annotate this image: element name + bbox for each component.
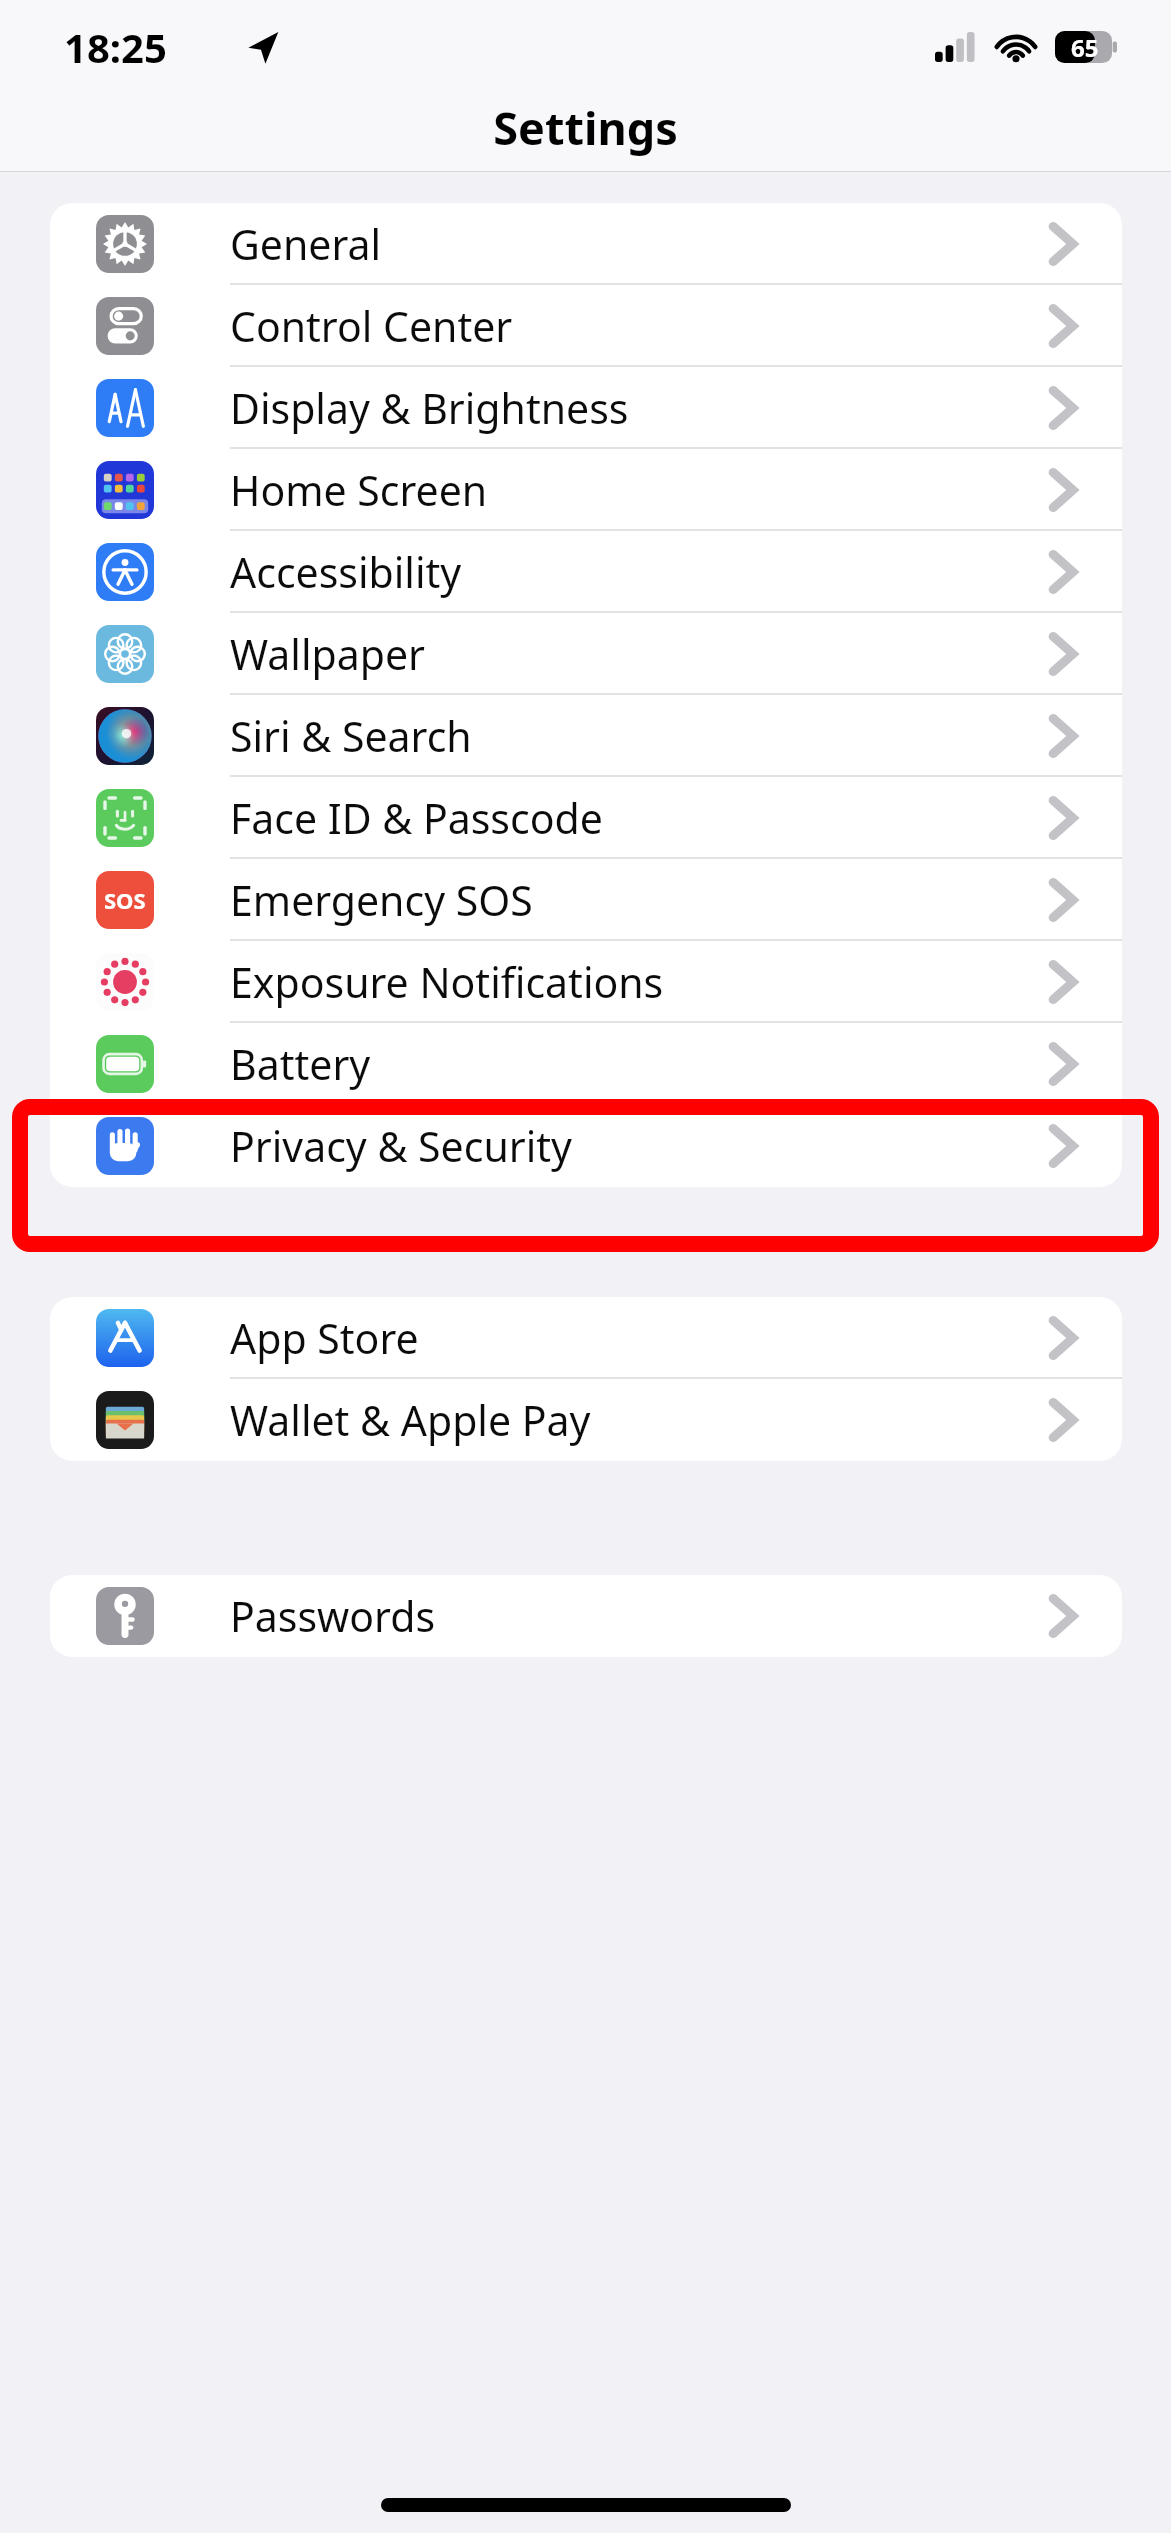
button[interactable]: Display & Brightness [50, 367, 1122, 449]
staticText: Privacy & Security [230, 1118, 572, 1174]
staticText: Face ID & Passcode [230, 790, 603, 846]
staticText: Wallpaper [230, 626, 425, 682]
staticText: Display & Brightness [230, 380, 629, 436]
button[interactable]: Exposure Notifications [50, 941, 1122, 1023]
button[interactable]: Passwords [50, 1575, 1122, 1657]
staticText: 18:25 [64, 20, 167, 74]
staticText: General [230, 216, 382, 272]
button[interactable]: Battery [50, 1023, 1122, 1105]
staticText: Battery [230, 1036, 371, 1092]
button[interactable]: Wallpaper [50, 613, 1122, 695]
staticText: Siri & Search [230, 708, 472, 764]
staticText: Exposure Notifications [230, 954, 664, 1010]
button[interactable]: Privacy & Security [50, 1105, 1122, 1187]
button[interactable]: Wallet & Apple Pay [50, 1379, 1122, 1461]
staticText: Accessibility [230, 544, 462, 600]
button[interactable]: Home Screen [50, 449, 1122, 531]
staticText: SOS [104, 885, 146, 915]
staticText: App Store [230, 1310, 419, 1366]
staticText: Home Screen [230, 462, 488, 518]
staticText: Passwords [230, 1588, 436, 1644]
staticText: Settings [493, 97, 678, 158]
staticText: Emergency SOS [230, 872, 533, 928]
staticText: 65 [1071, 31, 1099, 64]
staticText: Control Center [230, 298, 513, 354]
staticText: Wallet & Apple Pay [230, 1392, 591, 1448]
button[interactable]: Siri & Search [50, 695, 1122, 777]
button[interactable]: Face ID & Passcode [50, 777, 1122, 859]
button[interactable]: Accessibility [50, 531, 1122, 613]
button[interactable]: App Store [50, 1297, 1122, 1379]
button[interactable]: Control Center [50, 285, 1122, 367]
button[interactable]: General [50, 203, 1122, 285]
button[interactable]: SOS [50, 859, 1122, 941]
